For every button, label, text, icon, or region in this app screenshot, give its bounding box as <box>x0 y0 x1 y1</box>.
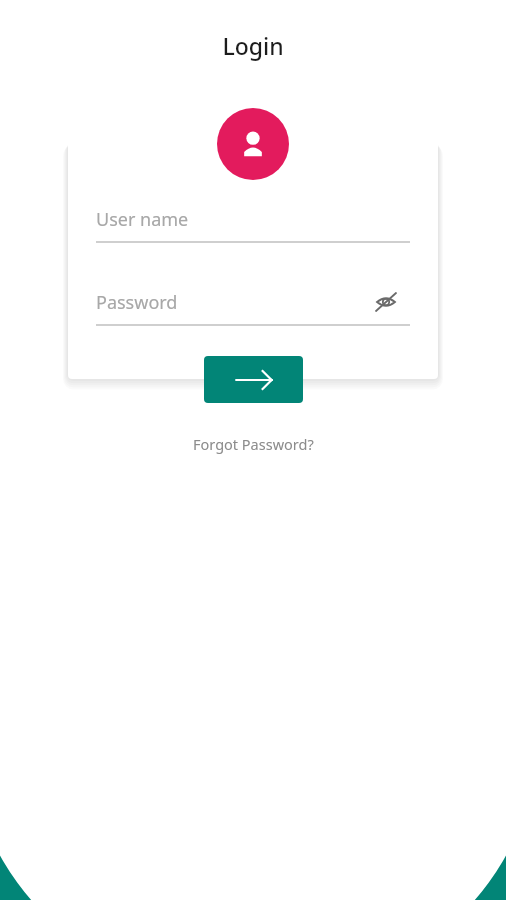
button[interactable]: Sign in <box>204 356 303 403</box>
button[interactable]: Don't have account? Sign Up Here <box>0 854 506 900</box>
staticText: Password <box>96 290 178 315</box>
staticText: Forgot Password? <box>193 434 314 454</box>
staticText: Login <box>0 30 506 61</box>
button[interactable]: User name <box>96 199 410 239</box>
staticText: User name <box>96 207 189 232</box>
button[interactable]: User avatar <box>217 108 289 180</box>
button[interactable]: Toggle password visibility <box>368 284 404 320</box>
button[interactable]: Password <box>96 282 410 322</box>
button[interactable]: Forgot Password? <box>0 430 506 458</box>
